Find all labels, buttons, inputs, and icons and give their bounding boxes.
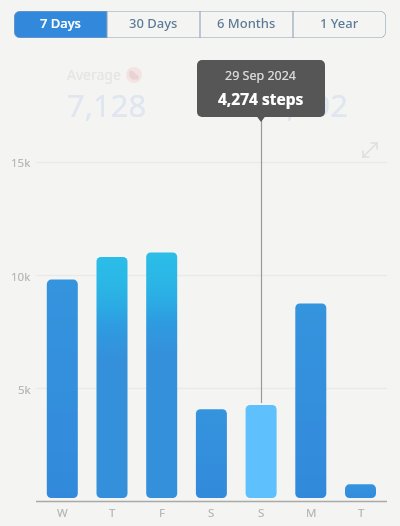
staticText: S <box>258 505 265 521</box>
staticText: T <box>109 505 116 521</box>
staticText: 5k <box>18 382 31 398</box>
staticText: 7 Days <box>40 14 81 32</box>
button[interactable]: 30 Days <box>107 11 200 38</box>
staticText: 7,128 <box>67 84 147 126</box>
staticText: S <box>208 505 215 521</box>
staticText: 15k <box>11 155 31 171</box>
button[interactable]: 7 Days <box>14 11 107 38</box>
staticText: 6 Months <box>217 14 276 32</box>
staticText: 49,892 <box>251 84 348 126</box>
button[interactable]: 6 Months <box>200 11 293 38</box>
staticText: 30 Days <box>129 14 178 32</box>
staticText: W <box>57 505 68 521</box>
staticText: 1 Year <box>320 14 359 32</box>
staticText: F <box>159 505 165 521</box>
staticText: 4,274 steps <box>218 88 304 109</box>
staticText: Average <box>67 65 121 84</box>
button[interactable]: 1 Year <box>293 11 386 38</box>
staticText: 10k <box>11 269 31 285</box>
button[interactable]: 29 Sep 2024 <box>197 60 325 117</box>
button[interactable]: Expand chart <box>360 140 380 160</box>
staticText: T <box>358 505 365 521</box>
staticText: M <box>306 505 317 521</box>
staticText: 29 Sep 2024 <box>225 67 297 84</box>
